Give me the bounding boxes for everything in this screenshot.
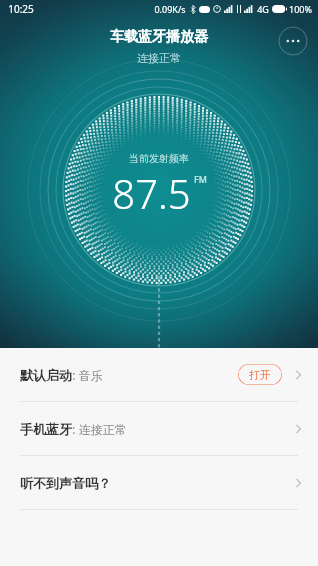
staticText: 4G	[257, 3, 269, 15]
staticText: 听不到声音吗？	[20, 475, 111, 491]
staticText: : 音乐	[72, 367, 103, 383]
staticText: 87.5	[112, 166, 191, 220]
staticText: 连接正常	[137, 51, 181, 65]
staticText: 当前发射频率	[129, 152, 189, 165]
staticText: FM	[194, 173, 207, 185]
staticText: 手机蓝牙	[20, 421, 72, 437]
staticText: 100%	[289, 3, 312, 15]
button[interactable]: 听不到声音吗？	[0, 456, 318, 509]
staticText: 车载蓝牙播放器	[110, 28, 208, 46]
button[interactable]: 手机蓝牙	[0, 402, 318, 455]
staticText: : 连接正常	[72, 421, 127, 437]
staticText: 默认启动	[20, 367, 72, 383]
staticText: 打开	[249, 368, 271, 382]
button[interactable]: 打开	[238, 364, 282, 385]
button[interactable]: 默认启动	[0, 348, 318, 401]
staticText: 0.09K/s	[154, 3, 186, 15]
staticText: 10:25	[8, 2, 34, 16]
button[interactable]: More options	[278, 26, 308, 56]
